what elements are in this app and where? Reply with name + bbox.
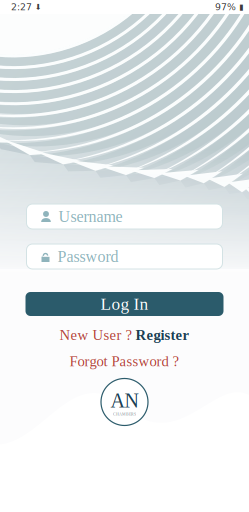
staticText: Log In — [100, 294, 148, 314]
button[interactable]: New User ? — [59, 327, 189, 343]
staticText: CHAMBERS — [113, 412, 136, 416]
staticText: Username — [58, 208, 122, 225]
staticText: Register — [135, 327, 189, 343]
staticText: Forgot Password ? — [69, 353, 179, 369]
staticText: AN — [110, 390, 138, 412]
staticText: 97% — [215, 2, 236, 12]
staticText: Password — [57, 248, 118, 265]
staticText: 2:27 — [11, 2, 32, 12]
staticText: ▮ — [236, 2, 243, 12]
button[interactable]: Log In — [25, 292, 223, 316]
staticText: New User ? — [59, 327, 132, 343]
button[interactable]: Forgot Password ? — [69, 353, 179, 369]
staticText: ⬇ — [32, 2, 42, 12]
